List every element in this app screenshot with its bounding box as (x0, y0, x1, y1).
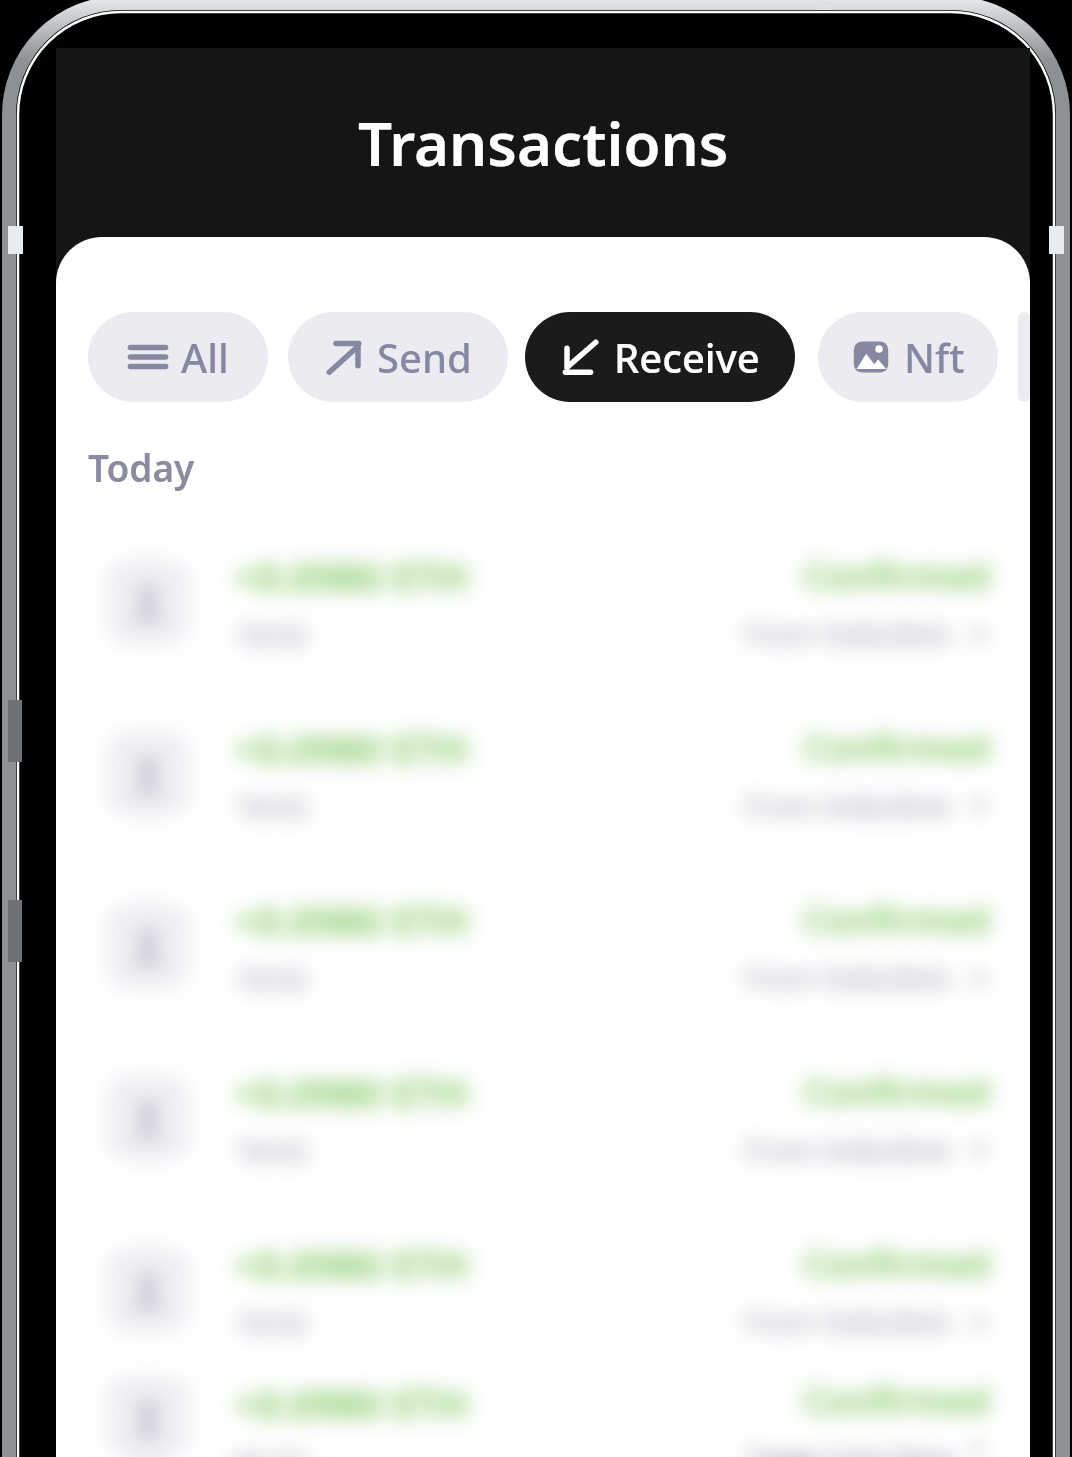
staticText: 18:02 (234, 1303, 309, 1342)
staticText: Confirmed (804, 551, 990, 600)
button[interactable]: Receive (525, 312, 795, 402)
staticText: From 0x8a3b4c (745, 1439, 954, 1457)
staticText: Transactions (358, 102, 729, 184)
staticText: Confirmed (804, 1239, 990, 1288)
staticText: 18:02 (234, 787, 309, 826)
button[interactable]: All (88, 312, 268, 402)
button[interactable]: +0.0980 ETH (56, 1032, 1030, 1203)
button[interactable]: Nft (818, 312, 998, 402)
staticText: From 0x8a3b4c (745, 958, 954, 997)
button[interactable]: +0.0980 ETH (56, 516, 1030, 687)
staticText: +0.0980 ETH (234, 893, 469, 947)
button[interactable]: Send (288, 312, 508, 402)
button[interactable]: More filters (1018, 312, 1030, 402)
staticText: 18:02 (234, 615, 309, 654)
staticText: Today (88, 442, 195, 492)
staticText: Confirmed (804, 1067, 990, 1116)
staticText: Nft (904, 330, 965, 384)
button[interactable]: +0.0980 ETH (56, 860, 1030, 1031)
staticText: From 0x8a3b4c (745, 786, 954, 825)
staticText: +0.0980 ETH (234, 1237, 469, 1291)
staticText: Send (377, 330, 472, 384)
staticText: 18:02 (234, 959, 309, 998)
staticText: All (181, 330, 229, 384)
staticText: From 0x8a3b4c (745, 614, 954, 653)
button[interactable]: +0.0980 ETH (56, 1204, 1030, 1375)
staticText: From 0x8a3b4c (745, 1130, 954, 1169)
staticText: +0.0980 ETH (234, 1065, 469, 1119)
staticText: From 0x8a3b4c (745, 1302, 954, 1341)
staticText: 18:02 (234, 1131, 309, 1170)
button[interactable]: +0.0980 ETH (56, 688, 1030, 859)
staticText: +0.0980 ETH (234, 1376, 469, 1430)
staticText: +0.0980 ETH (234, 549, 469, 603)
staticText: Confirmed (804, 1376, 990, 1425)
button[interactable]: +0.0980 ETH (56, 1376, 1030, 1457)
staticText: Receive (614, 330, 760, 384)
staticText: Confirmed (804, 895, 990, 944)
staticText: Confirmed (804, 723, 990, 772)
staticText: +0.0980 ETH (234, 721, 469, 775)
staticText: 18:02 (234, 1442, 309, 1457)
